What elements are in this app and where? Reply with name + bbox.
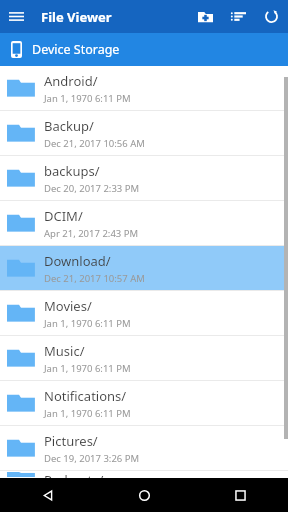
button[interactable]: Sort	[222, 0, 255, 33]
button[interactable]: Android/	[0, 66, 288, 110]
button[interactable]: Pictures/	[0, 426, 288, 470]
staticText: Apr 21, 2017 2:43 PM	[44, 227, 139, 240]
staticText: Jan 1, 1970 6:11 PM	[44, 407, 131, 420]
button[interactable]: Device Storage	[0, 33, 288, 66]
staticText: backups/	[44, 162, 100, 180]
staticText: Dec 21, 2017 10:57 AM	[44, 272, 145, 285]
button[interactable]: Refresh	[255, 0, 288, 33]
button[interactable]: Create new folder	[189, 0, 222, 33]
button[interactable]: Podcasts/	[0, 471, 288, 478]
button[interactable]: Recent apps	[192, 478, 288, 512]
button[interactable]: Notifications/	[0, 381, 288, 425]
staticText: DCIM/	[44, 207, 83, 225]
staticText: Dec 20, 2017 2:33 PM	[44, 182, 140, 195]
button[interactable]: DCIM/	[0, 201, 288, 245]
button[interactable]: Open navigation drawer	[0, 0, 33, 33]
staticText: Jan 1, 1970 6:11 PM	[44, 92, 131, 105]
staticText: Movies/	[44, 297, 92, 315]
staticText: Device Storage	[32, 41, 120, 58]
staticText: Android/	[44, 72, 98, 90]
button[interactable]: Music/	[0, 336, 288, 380]
button[interactable]: Movies/	[0, 291, 288, 335]
staticText: Jan 1, 1970 6:11 PM	[44, 362, 131, 375]
staticText: Dec 19, 2017 3:26 PM	[44, 452, 140, 465]
button[interactable]: Back	[0, 478, 96, 512]
staticText: Podcasts/	[44, 471, 104, 478]
staticText: Music/	[44, 342, 85, 360]
staticText: Notifications/	[44, 387, 127, 405]
staticText: Dec 21, 2017 10:56 AM	[44, 137, 145, 150]
staticText: Pictures/	[44, 432, 98, 450]
button[interactable]: backups/	[0, 156, 288, 200]
button[interactable]: Home	[96, 478, 192, 512]
button[interactable]: Backup/	[0, 111, 288, 155]
button[interactable]: Download/	[0, 246, 288, 290]
staticText: Jan 1, 1970 6:11 PM	[44, 317, 131, 330]
staticText: File Viewer	[41, 8, 112, 26]
staticText: Backup/	[44, 117, 94, 135]
staticText: Download/	[44, 252, 111, 270]
